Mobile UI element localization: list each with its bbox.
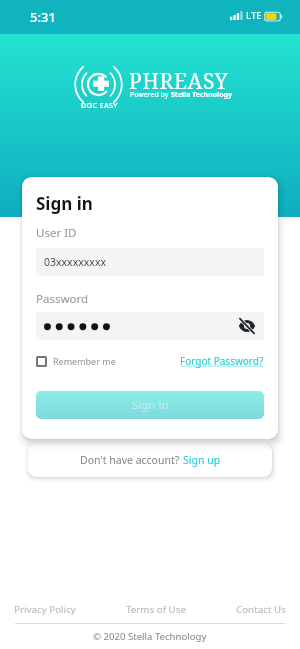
staticText: Sign in — [132, 397, 169, 413]
button[interactable]: Sign in — [36, 391, 264, 419]
staticText: © 2020 Stella Technology — [93, 630, 207, 643]
button[interactable]: Contact Us — [236, 603, 286, 616]
staticText: DOC EASY — [81, 100, 118, 110]
staticText: PHREASY — [129, 67, 229, 96]
staticText: Remember me — [53, 355, 116, 367]
button[interactable]: Don't have account? — [28, 443, 272, 477]
staticText: Password — [36, 291, 89, 307]
button[interactable]: Remember me — [36, 355, 116, 367]
staticText: User ID — [36, 225, 77, 241]
button[interactable]: 03xxxxxxxxx — [36, 248, 264, 276]
button[interactable]: Terms of Use — [126, 603, 186, 616]
staticText: Sign up — [183, 453, 221, 467]
staticText: Sign in — [36, 192, 93, 215]
staticText: Don't have account? — [80, 453, 183, 467]
staticText: 5:31 — [30, 8, 56, 26]
staticText: Stella Technology — [171, 90, 232, 100]
staticText: LTE — [246, 9, 262, 22]
button[interactable]: Privacy Policy — [14, 603, 76, 616]
staticText: Powered by — [130, 90, 171, 100]
button[interactable]: Forgot Password? — [180, 354, 264, 368]
staticText: 03xxxxxxxxx — [44, 255, 107, 269]
button[interactable]: Show password — [235, 314, 259, 338]
button[interactable]: Show password — [36, 312, 264, 340]
